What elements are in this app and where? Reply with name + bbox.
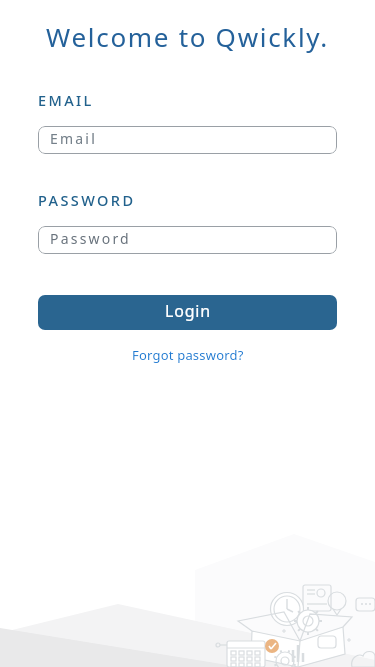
button[interactable]: Forgot password? [132, 346, 244, 364]
staticText: Login [165, 300, 211, 322]
button[interactable]: Email [38, 126, 337, 154]
staticText: EMAIL [38, 90, 94, 110]
staticText: Welcome to Qwickly. [0, 19, 375, 54]
staticText: Email [50, 129, 97, 148]
button[interactable]: Password [38, 226, 337, 254]
button[interactable]: Login [38, 295, 337, 330]
staticText: Password [50, 229, 131, 248]
staticText: PASSWORD [38, 190, 136, 210]
staticText: Forgot password? [132, 346, 244, 364]
